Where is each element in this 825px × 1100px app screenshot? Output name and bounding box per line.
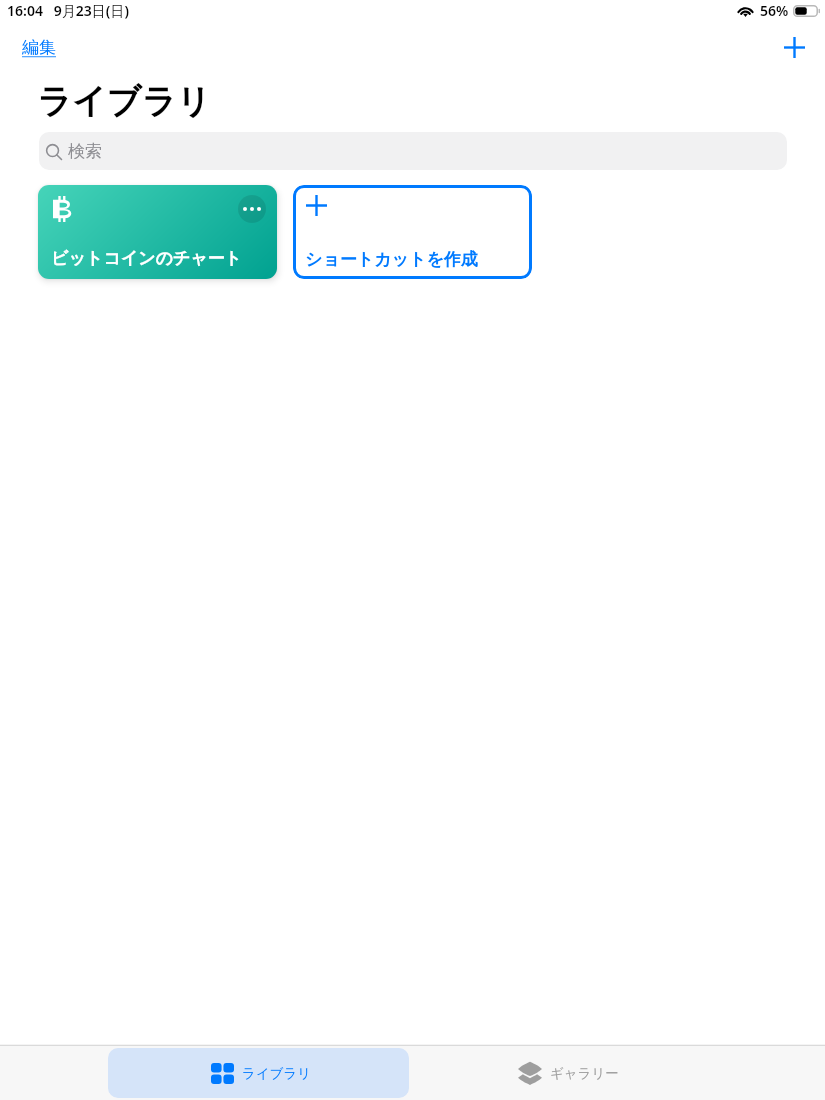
button[interactable]: 検索 bbox=[39, 132, 787, 170]
button[interactable]: More options bbox=[238, 195, 266, 223]
button[interactable]: More options bbox=[38, 185, 277, 279]
staticText: ライブラリ bbox=[242, 1065, 312, 1082]
staticText: 検索 bbox=[68, 141, 102, 162]
button[interactable]: 編集 bbox=[16, 32, 62, 63]
staticText: 56% bbox=[760, 1, 789, 20]
button[interactable]: ギャラリー bbox=[506, 1053, 631, 1093]
button[interactable]: ショートカットを作成 bbox=[293, 185, 532, 279]
staticText: ビットコインのチャート bbox=[51, 248, 242, 269]
button[interactable]: Add shortcut bbox=[774, 27, 814, 67]
staticText: ギャラリー bbox=[550, 1065, 619, 1082]
staticText: ショートカットを作成 bbox=[305, 249, 478, 270]
staticText: 16:04 9月23日(日) bbox=[7, 1, 129, 20]
button[interactable]: ライブラリ bbox=[108, 1048, 409, 1098]
staticText: 編集 bbox=[22, 37, 56, 58]
staticText: ライブラリ bbox=[37, 80, 211, 123]
